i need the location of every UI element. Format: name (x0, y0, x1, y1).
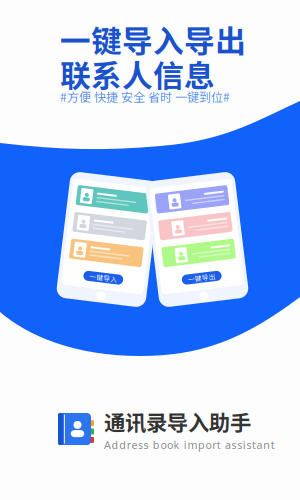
staticText: 一键导入 (94, 273, 122, 283)
button[interactable]: 一键导出 (177, 273, 217, 283)
staticText: 一键导出 (183, 273, 211, 283)
staticText: 一键导入导出 (60, 17, 246, 61)
staticText: 通讯录导入助手 (104, 406, 251, 437)
button[interactable]: 一键导入 (88, 273, 128, 283)
staticText: #方便 快捷 安全 省时 一键到位# (60, 88, 230, 105)
staticText: 联系人信息 (60, 51, 215, 96)
staticText: Address book import assistant (104, 438, 275, 452)
